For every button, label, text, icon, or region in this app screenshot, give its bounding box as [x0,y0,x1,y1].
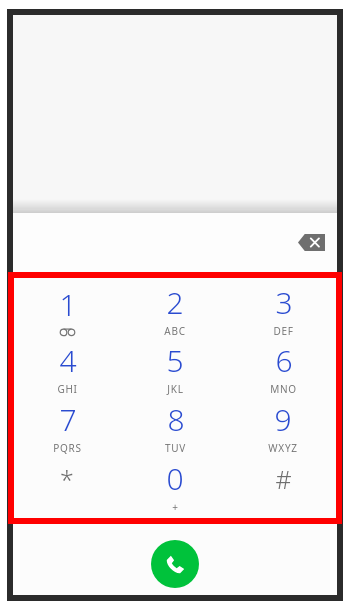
button[interactable]: 4 [13,339,121,397]
button[interactable]: 6 [229,339,337,397]
staticText: DEF [273,324,294,338]
staticText: PQRS [53,441,82,455]
staticText: GHI [57,382,78,396]
staticText: MNO [270,382,297,396]
staticText: WXYZ [268,441,298,455]
staticText: 5 [166,340,184,381]
staticText: 9 [274,399,292,440]
staticText: 7 [59,399,77,440]
staticText: ABC [164,324,186,338]
staticText: # [275,462,292,496]
staticText: 1 [59,284,77,325]
staticText: 0 [166,458,184,499]
button[interactable]: 1 [13,281,121,339]
button[interactable]: 8 [121,397,229,456]
staticText: 3 [275,282,293,323]
staticText: * [60,462,74,496]
staticText: TUV [165,441,186,455]
button[interactable]: 3 [229,281,337,339]
staticText: 2 [166,282,184,323]
button[interactable]: 2 [121,281,229,339]
staticText: + [172,500,179,514]
button[interactable]: * [13,456,121,515]
button[interactable]: 0 [121,456,229,515]
staticText: JKL [167,382,184,396]
button[interactable]: Backspace [290,224,332,260]
staticText: 8 [167,399,185,440]
button[interactable]: 5 [121,339,229,397]
staticText: 4 [59,340,77,381]
button[interactable]: 7 [13,397,121,456]
button[interactable]: # [229,456,337,515]
button[interactable]: Call [151,540,199,588]
button[interactable]: 9 [229,397,337,456]
staticText: 6 [275,340,293,381]
